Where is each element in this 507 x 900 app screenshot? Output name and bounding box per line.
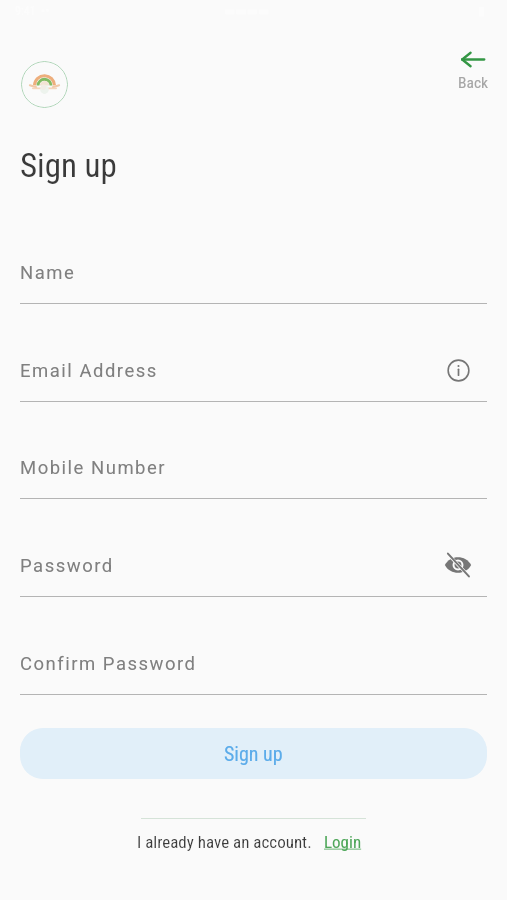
button[interactable]: Email Address [20,355,487,401]
button[interactable]: Login [322,826,364,858]
staticText: Sign up [224,742,283,765]
staticText: Mobile Number [20,457,167,479]
button[interactable]: Confirm Password [20,648,487,694]
staticText: Sign up [20,146,117,185]
button[interactable]: Show password [444,552,472,578]
button[interactable]: Back [450,44,498,94]
staticText: Email Address [20,360,158,382]
button[interactable]: App logo [21,61,68,108]
staticText: Password [20,555,114,577]
staticText: Back [458,74,489,92]
button[interactable]: Mobile Number [20,452,487,498]
staticText: Login [324,832,362,852]
staticText: Name [20,262,76,284]
button[interactable]: Name [20,257,487,303]
staticText: Confirm Password [20,653,197,675]
button[interactable]: Password [20,550,487,596]
button[interactable]: Sign up [20,728,487,779]
button[interactable]: Information [447,359,470,382]
staticText: I already have an account. [137,832,312,852]
